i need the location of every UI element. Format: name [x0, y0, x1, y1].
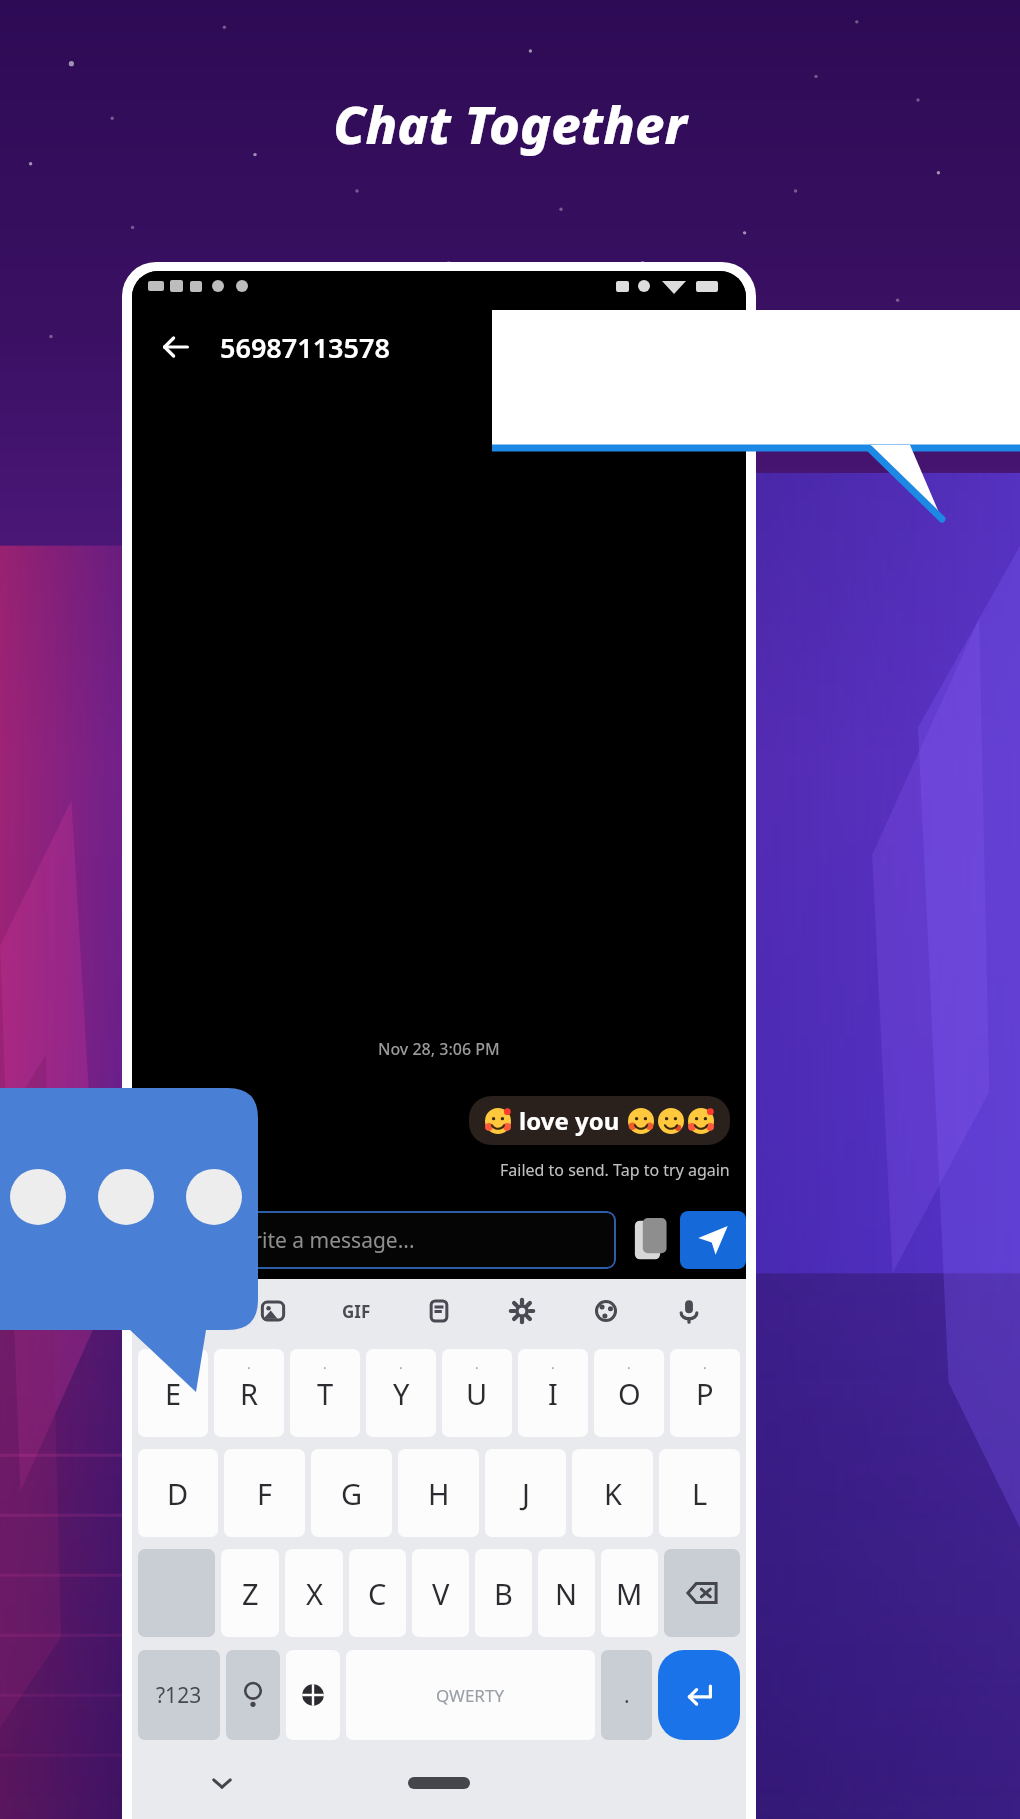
- button[interactable]: L: [659, 1449, 740, 1537]
- staticText: M: [616, 1574, 643, 1613]
- button[interactable]: .: [670, 1349, 740, 1437]
- staticText: J: [522, 1474, 530, 1513]
- staticText: I: [548, 1374, 558, 1413]
- staticText: Chat Together: [333, 88, 687, 159]
- button[interactable]: Toolbar action 6: [663, 1285, 715, 1337]
- staticText: O: [618, 1374, 641, 1413]
- staticText: .: [399, 1355, 403, 1373]
- button[interactable]: D: [138, 1449, 218, 1537]
- staticText: B: [494, 1574, 513, 1613]
- staticText: X: [306, 1574, 323, 1613]
- staticText: E: [165, 1374, 182, 1413]
- button[interactable]: J: [485, 1449, 566, 1537]
- staticText: .: [703, 1355, 707, 1373]
- staticText: .: [171, 1355, 175, 1373]
- staticText: Write a message...: [234, 1226, 415, 1255]
- button[interactable]: Back: [150, 321, 202, 373]
- button[interactable]: C: [349, 1549, 406, 1637]
- button[interactable]: X: [285, 1549, 343, 1637]
- staticText: C: [368, 1574, 387, 1613]
- staticText: Failed to send. Tap to try again: [500, 1159, 730, 1181]
- button[interactable]: Keyboard modes: [163, 1285, 215, 1337]
- button[interactable]: Toolbar action 2: [330, 1285, 382, 1337]
- staticText: L: [692, 1474, 708, 1513]
- button[interactable]: Hide keyboard: [132, 1747, 312, 1819]
- button[interactable]: .: [442, 1349, 512, 1437]
- staticText: D: [167, 1474, 189, 1513]
- staticText: F: [257, 1474, 273, 1513]
- staticText: love you: [519, 1104, 620, 1137]
- button[interactable]: G: [311, 1449, 392, 1537]
- staticText: ?123: [156, 1681, 202, 1710]
- button[interactable]: Toolbar action 4: [496, 1285, 548, 1337]
- button[interactable]: M: [601, 1549, 658, 1637]
- button[interactable]: Toolbar action 5: [580, 1285, 632, 1337]
- staticText: N: [555, 1574, 578, 1613]
- button[interactable]: Enter: [658, 1650, 740, 1740]
- staticText: .: [247, 1355, 251, 1373]
- staticText: QWERTY: [436, 1684, 505, 1707]
- button[interactable]: Backspace: [664, 1549, 740, 1637]
- button[interactable]: .: [290, 1349, 360, 1437]
- staticText: H: [428, 1474, 450, 1513]
- staticText: G: [341, 1474, 363, 1513]
- button[interactable]: Emoji and comma: [226, 1650, 280, 1740]
- button[interactable]: Add attachment: [142, 1212, 198, 1268]
- staticText: .: [551, 1355, 555, 1373]
- staticText: Y: [393, 1374, 410, 1413]
- staticText: U: [466, 1374, 488, 1413]
- button[interactable]: Write a message...: [210, 1211, 616, 1269]
- button[interactable]: .: [601, 1650, 652, 1740]
- button[interactable]: .: [214, 1349, 284, 1437]
- staticText: R: [240, 1374, 259, 1413]
- staticText: T: [317, 1374, 334, 1413]
- staticText: .: [323, 1355, 327, 1373]
- button[interactable]: Home: [312, 1747, 565, 1819]
- button[interactable]: .: [366, 1349, 436, 1437]
- button[interactable]: K: [572, 1449, 653, 1537]
- staticText: GIF: [342, 1300, 371, 1323]
- staticText: .: [627, 1355, 631, 1373]
- button[interactable]: Change language: [286, 1650, 340, 1740]
- button[interactable]: V: [412, 1549, 469, 1637]
- staticText: P: [696, 1374, 714, 1413]
- staticText: .: [624, 1681, 630, 1710]
- staticText: 56987113578: [220, 329, 390, 366]
- staticText: Nov 28, 3:06 PM: [378, 1038, 500, 1060]
- button[interactable]: Toolbar action 1: [247, 1285, 299, 1337]
- button[interactable]: ?123: [138, 1650, 220, 1740]
- button[interactable]: N: [538, 1549, 595, 1637]
- button[interactable]: F: [224, 1449, 305, 1537]
- staticText: .: [475, 1355, 479, 1373]
- button[interactable]: Send: [680, 1211, 746, 1269]
- button[interactable]: H: [398, 1449, 479, 1537]
- button[interactable]: .: [518, 1349, 588, 1437]
- button[interactable]: .: [138, 1349, 208, 1437]
- button[interactable]: Attach file: [626, 1214, 674, 1266]
- staticText: Z: [242, 1574, 259, 1613]
- staticText: V: [432, 1574, 450, 1613]
- button[interactable]: B: [475, 1549, 532, 1637]
- staticText: K: [604, 1474, 622, 1513]
- button[interactable]: QWERTY: [346, 1650, 595, 1740]
- button[interactable]: Toolbar action 3: [413, 1285, 465, 1337]
- button[interactable]: Z: [221, 1549, 279, 1637]
- button[interactable]: .: [594, 1349, 664, 1437]
- button[interactable]: love you: [469, 1096, 730, 1145]
